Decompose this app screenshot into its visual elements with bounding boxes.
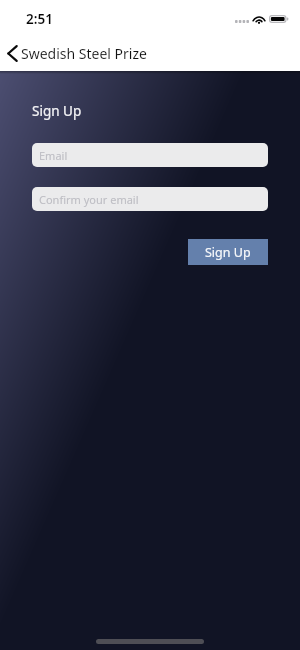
button[interactable]: Confirm your email xyxy=(32,187,268,211)
staticText: Sign Up xyxy=(32,102,82,120)
button[interactable]: Sign Up xyxy=(188,239,268,265)
staticText: Confirm your email xyxy=(39,192,139,207)
staticText: Sign Up xyxy=(205,244,251,261)
button[interactable]: Email xyxy=(32,143,268,167)
other: Back xyxy=(7,45,18,62)
staticText: Swedish Steel Prize xyxy=(21,44,147,63)
button[interactable]: Back xyxy=(0,36,153,71)
staticText: Email xyxy=(39,148,68,163)
staticText: 2:51 xyxy=(26,10,53,28)
